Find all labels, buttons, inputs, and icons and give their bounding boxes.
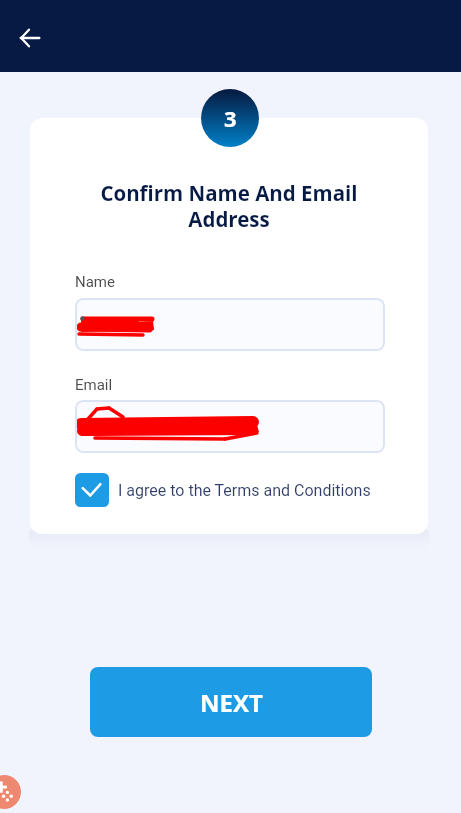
staticText: Email <box>75 376 113 394</box>
button[interactable] <box>75 400 385 453</box>
staticText: NEXT <box>200 686 263 719</box>
staticText: 3 <box>224 103 237 133</box>
button[interactable]: Back <box>13 21 47 55</box>
staticText: Name <box>75 273 115 291</box>
button[interactable]: NEXT <box>90 667 372 737</box>
staticText: Confirm Name And Email Address <box>72 179 386 233</box>
button[interactable]: Accessibility options <box>0 775 21 809</box>
button[interactable]: I agree to the Terms and Conditions <box>75 473 371 507</box>
button[interactable] <box>75 298 385 351</box>
staticText: I agree to the Terms and Conditions <box>118 481 371 500</box>
